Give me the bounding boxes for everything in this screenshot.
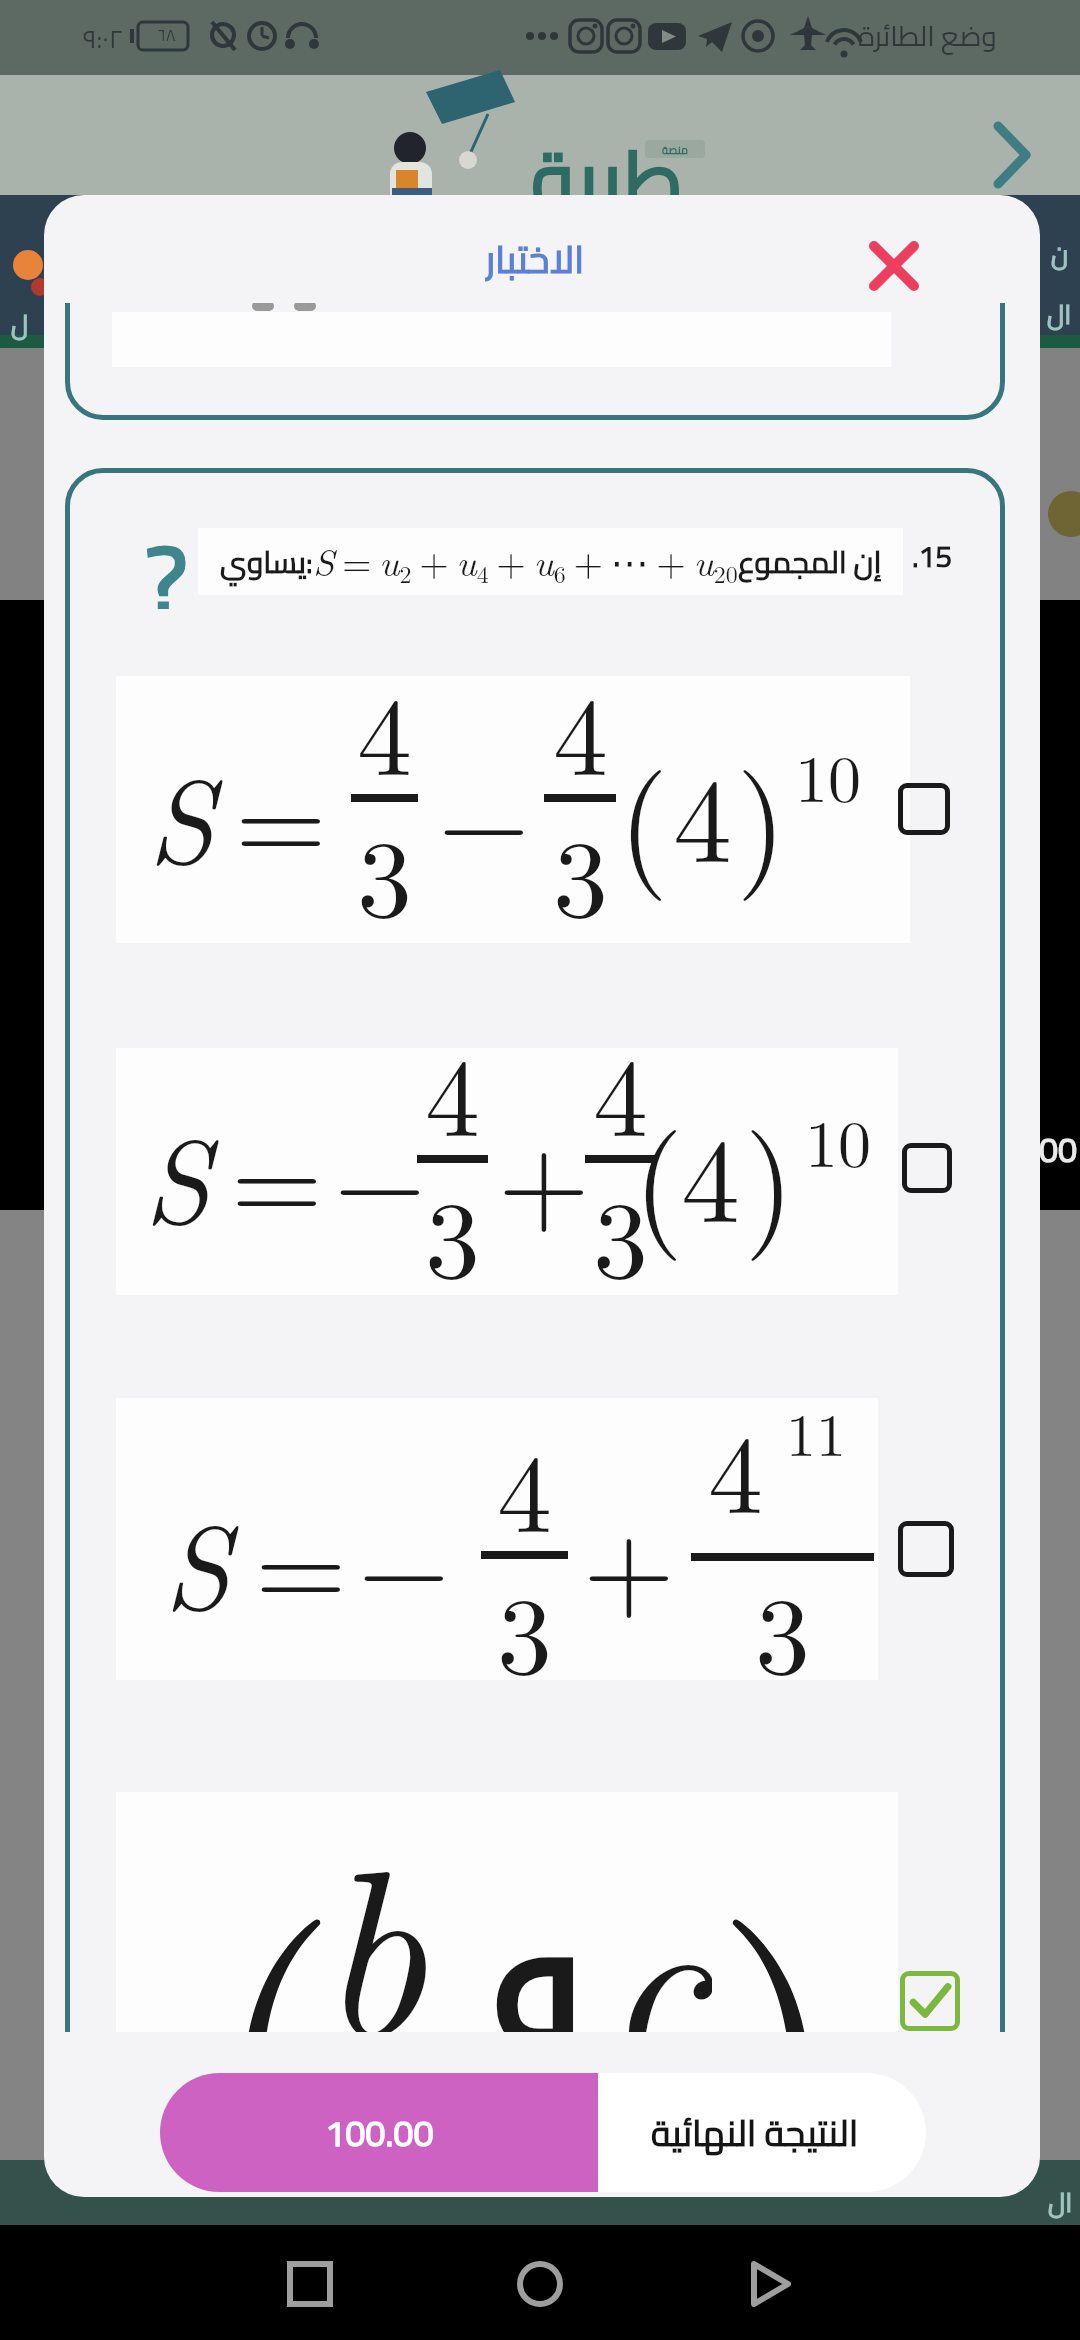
staticText: النتيجة النهائية bbox=[651, 2099, 859, 2166]
button[interactable] bbox=[902, 1143, 952, 1193]
staticText: 100.00 bbox=[325, 2099, 434, 2166]
staticText: − bbox=[334, 1089, 426, 1256]
staticText: 4 bbox=[553, 651, 608, 807]
staticText: ٦٨ bbox=[158, 20, 176, 50]
button[interactable] bbox=[116, 1048, 898, 1295]
staticText: = bbox=[255, 1475, 347, 1642]
button[interactable]: 100.00 bbox=[160, 2073, 598, 2192]
staticText: 3 bbox=[553, 793, 608, 949]
staticText: S bbox=[144, 1090, 211, 1257]
staticText: ( bbox=[618, 721, 669, 905]
button[interactable] bbox=[288, 2262, 332, 2306]
staticText: S = u2 + u4 + u6 + ⋯ + u20 bbox=[313, 533, 738, 590]
staticText: 4 bbox=[425, 1012, 480, 1168]
staticText: إن المجموع bbox=[738, 534, 882, 590]
button[interactable] bbox=[900, 1971, 960, 2031]
staticText: 10 bbox=[805, 1093, 871, 1187]
button[interactable] bbox=[116, 676, 910, 943]
staticText: الاختبار bbox=[485, 223, 585, 293]
button[interactable]: النتيجة النهائية bbox=[583, 2073, 926, 2192]
staticText: 00 bbox=[1039, 1118, 1078, 1168]
staticText: + bbox=[498, 1089, 590, 1256]
staticText: ال bbox=[1047, 290, 1072, 334]
staticText: .15 bbox=[912, 528, 953, 583]
staticText: − bbox=[438, 729, 530, 896]
button[interactable] bbox=[116, 1792, 898, 2032]
staticText: و bbox=[487, 1821, 586, 2032]
staticText: 3 bbox=[357, 793, 412, 949]
staticText: ) bbox=[714, 1795, 843, 2032]
staticText: ) bbox=[736, 721, 787, 905]
staticText: c bbox=[603, 1805, 712, 2032]
button[interactable] bbox=[898, 783, 950, 835]
staticText: طيبة bbox=[531, 104, 684, 228]
staticText: ( bbox=[211, 1795, 340, 2032]
staticText: = bbox=[235, 729, 327, 896]
staticText: وضع الطائرة bbox=[858, 10, 997, 62]
staticText: ( bbox=[633, 1081, 684, 1265]
staticText: منصة bbox=[662, 140, 689, 158]
staticText: 4 bbox=[681, 1089, 741, 1256]
staticText: 11 bbox=[786, 1388, 846, 1473]
staticText: 3 bbox=[425, 1154, 480, 1310]
staticText: ال bbox=[1048, 2178, 1073, 2224]
staticText: 3 bbox=[593, 1154, 648, 1310]
staticText: − bbox=[358, 1475, 450, 1642]
staticText: 3 bbox=[755, 1550, 810, 1706]
staticText: يساوي: bbox=[220, 534, 313, 590]
button[interactable] bbox=[871, 243, 917, 289]
button[interactable] bbox=[898, 1521, 954, 1577]
staticText: S bbox=[148, 730, 215, 897]
staticText: 4 bbox=[673, 729, 733, 896]
staticText: 4 bbox=[497, 1408, 552, 1564]
staticText: ? bbox=[145, 489, 188, 609]
staticText: 10 bbox=[795, 728, 861, 822]
button[interactable] bbox=[990, 120, 1035, 190]
button[interactable] bbox=[748, 2262, 792, 2306]
staticText: ) bbox=[744, 1081, 795, 1265]
staticText: ٩:٠٢ bbox=[83, 14, 123, 58]
staticText: ل bbox=[11, 300, 29, 346]
staticText: 4 bbox=[708, 1389, 763, 1545]
staticText: 4 bbox=[593, 1012, 648, 1168]
staticText: + bbox=[583, 1475, 675, 1642]
staticText: b bbox=[318, 1771, 427, 2032]
staticText: = bbox=[231, 1089, 323, 1256]
staticText: ن bbox=[1051, 230, 1069, 274]
button[interactable] bbox=[518, 2262, 562, 2306]
staticText: 3 bbox=[497, 1550, 552, 1706]
staticText: 4 bbox=[357, 651, 412, 807]
button[interactable] bbox=[116, 1398, 878, 1680]
staticText: S bbox=[164, 1476, 231, 1643]
